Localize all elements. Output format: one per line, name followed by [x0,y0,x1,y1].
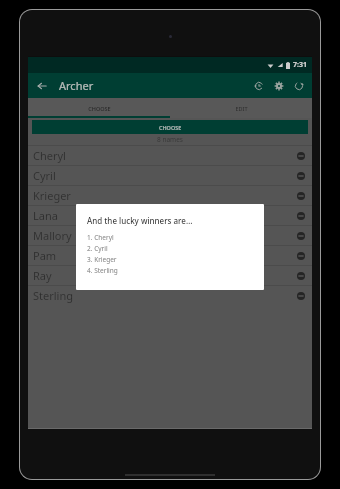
button[interactable]: Remove Cheryl [292,147,310,165]
staticText: And the lucky winners are… [87,215,193,226]
button[interactable]: Remove Ray [292,267,310,285]
staticText: EDIT [235,105,248,112]
button[interactable]: Remove Sterling [292,287,310,305]
staticText: 3. Krieger [87,255,117,264]
button[interactable]: Remove Mallory [292,227,310,245]
staticText: CHOOSE [159,124,182,131]
staticText: 7:31 [293,60,307,70]
staticText: 2. Cyril [87,244,108,253]
staticText: Cyril [33,168,56,183]
button[interactable]: Krieger [28,186,312,205]
button[interactable]: Refresh [289,76,309,96]
button[interactable]: Lana [28,206,312,225]
button[interactable]: Cyril [28,166,312,185]
button[interactable]: Remove Pam [292,247,310,265]
staticText: Cheryl [33,148,66,163]
staticText: Mallory [33,228,72,243]
staticText: 8 names [157,135,183,144]
staticText: CHOOSE [88,105,111,112]
button[interactable]: Remove Krieger [292,187,310,205]
staticText: Lana [33,208,58,223]
button[interactable]: CHOOSE [28,98,170,118]
button[interactable]: Remove Cyril [292,167,310,185]
button[interactable]: Settings [269,76,289,96]
staticText: Archer [59,78,94,93]
button[interactable]: Navigate up [32,76,52,96]
staticText: Krieger [33,188,71,203]
button[interactable]: Cheryl [28,146,312,165]
button[interactable]: Pam [28,246,312,265]
staticText: Sterling [33,288,73,303]
staticText: Pam [33,248,57,263]
button[interactable]: Sterling [28,286,312,305]
button[interactable]: Ray [28,266,312,285]
button[interactable]: Remove Lana [292,207,310,225]
staticText: 4. Sterling [87,266,118,275]
staticText: Ray [33,268,52,283]
staticText: 1. Cheryl [87,233,114,242]
button[interactable]: CHOOSE [32,120,308,134]
button[interactable]: Mallory [28,226,312,245]
button[interactable]: History [249,76,269,96]
